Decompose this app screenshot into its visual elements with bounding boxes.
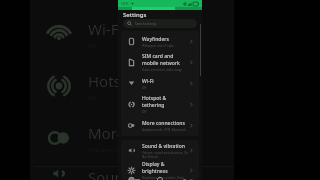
staticText: Settings <box>123 11 147 19</box>
staticText: Wayfinders <box>142 36 169 43</box>
staticText: Hotspc <box>88 71 138 91</box>
button[interactable]: More connections <box>121 115 199 136</box>
staticText: Volume, sound and vibration, Do Not Dist… <box>142 151 189 159</box>
staticText: Brightness, Eye comfort, Dark mode <box>142 176 189 180</box>
staticText: Wallpaper and UI style <box>142 44 174 48</box>
button[interactable]: Wayfinders <box>121 31 199 52</box>
staticText: Data connection, data usage <box>142 68 183 72</box>
button[interactable]: Search <box>123 19 197 28</box>
staticText: SIM card and mobile network <box>142 53 189 67</box>
staticText: 10:31 <box>121 2 129 6</box>
button[interactable]: Wi-Fi <box>121 73 199 94</box>
staticText: Display & brightness <box>142 161 189 175</box>
staticText: Wi-Fi <box>142 78 154 85</box>
staticText: More connections <box>142 120 185 127</box>
staticText: Off <box>142 86 147 90</box>
staticText: Wi-Fi <box>88 19 123 39</box>
staticText: Off <box>142 110 147 114</box>
staticText: More c <box>88 123 137 143</box>
staticText: Airplane mode, VPN, Bluetooth <box>142 128 186 132</box>
staticText: Hotspot & tethering <box>142 95 189 109</box>
other: Search <box>127 21 132 26</box>
staticText: Search settings <box>135 22 157 26</box>
button[interactable]: Sound & vibration <box>121 140 199 161</box>
button[interactable]: Display & brightness <box>121 161 199 180</box>
staticText: Sound <box>88 167 134 180</box>
button[interactable]: Hotspot & tethering <box>121 94 199 115</box>
button[interactable]: SIM card and mobile network <box>121 52 199 73</box>
staticText: Sound & vibration <box>142 143 185 150</box>
